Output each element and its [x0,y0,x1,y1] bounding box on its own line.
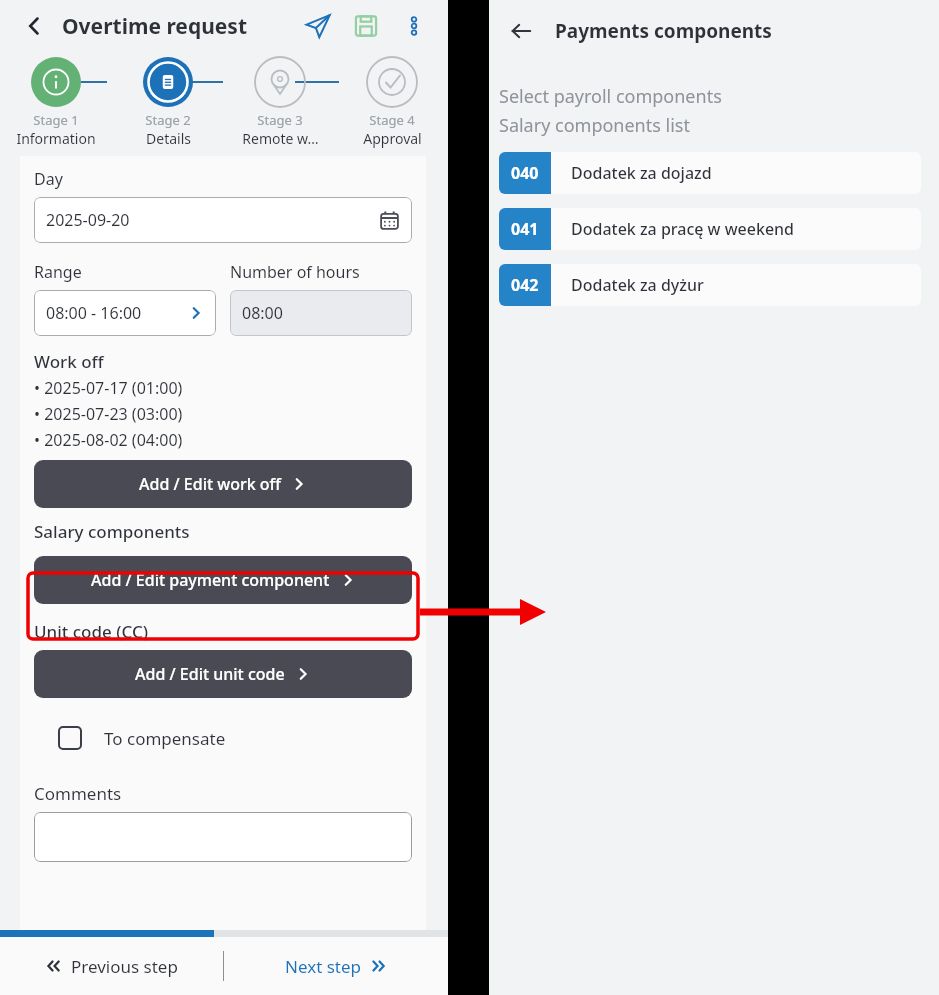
staticText: To compensate [104,727,226,750]
button[interactable]: Previous step [0,937,223,995]
button[interactable]: Add / Edit work off [34,460,412,508]
button[interactable]: Add / Edit unit code [34,650,412,698]
staticText: Stage 2 [145,111,191,129]
staticText: • 2025-07-23 (03:00) [34,403,183,425]
staticText: Dodatek za pracę w weekend [571,218,795,240]
staticText: Next step [285,955,362,978]
button[interactable]: Stage 3 [224,52,336,148]
button[interactable] [34,812,412,862]
button[interactable]: More options [394,6,434,46]
button[interactable]: Stage 2 [112,52,224,148]
staticText: • 2025-08-02 (04:00) [34,429,183,451]
staticText: Stage 1 [33,111,79,129]
button[interactable]: Stage 1 [0,52,112,148]
staticText: 040 [511,162,539,184]
staticText: Add / Edit payment component [91,569,330,591]
staticText: Approval [363,129,422,148]
staticText: Information [16,129,96,148]
staticText: 08:00 - 16:00 [46,302,142,324]
button[interactable]: 2025-09-20 [34,197,412,243]
staticText: Details [146,129,191,148]
staticText: 2025-09-20 [46,209,130,231]
staticText: Add / Edit work off [139,473,281,495]
button[interactable]: Send [298,6,338,46]
staticText: Previous step [71,955,178,978]
staticText: Stage 4 [369,111,415,129]
button[interactable]: Next step [224,937,448,995]
button[interactable]: 040 [499,152,921,194]
staticText: Remote w… [242,129,319,148]
staticText: 08:00 [242,302,283,324]
staticText: Dodatek za dyżur [571,274,704,296]
staticText: Day [34,168,63,190]
staticText: Payments components [555,18,772,44]
staticText: Range [34,261,82,283]
button[interactable]: 041 [499,208,921,250]
button[interactable]: To compensate [34,722,412,754]
staticText: Unit code (CC) [34,620,149,643]
staticText: Select payroll components [499,84,722,109]
staticText: Dodatek za dojazd [571,162,712,184]
staticText: Number of hours [230,261,360,283]
staticText: 041 [511,218,539,240]
staticText: Add / Edit unit code [135,663,285,685]
button[interactable]: Add / Edit payment component [34,556,412,604]
staticText: Work off [34,350,104,373]
staticText: Salary components list [499,113,690,138]
button[interactable]: Back [501,11,541,51]
button[interactable]: 042 [499,264,921,306]
button[interactable]: Back [14,6,54,46]
staticText: Stage 3 [257,111,303,129]
staticText: Salary components [34,520,190,543]
staticText: • 2025-07-17 (01:00) [34,377,183,399]
button[interactable]: Save [346,6,386,46]
staticText: 042 [511,274,539,296]
staticText: Comments [34,782,122,805]
staticText: Overtime request [62,12,248,41]
button[interactable]: Stage 4 [336,52,448,148]
button[interactable]: 08:00 - 16:00 [34,290,216,336]
